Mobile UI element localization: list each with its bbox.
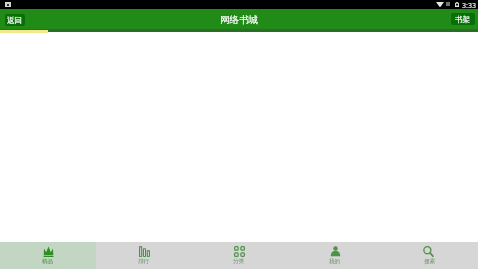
staticText: 我的 (329, 258, 341, 265)
other: 分类 (234, 246, 245, 257)
button[interactable]: 分类 (191, 242, 287, 269)
staticText: 网络书城 (220, 14, 258, 26)
other: 搜索 (423, 246, 434, 257)
other: 我的 (330, 246, 341, 257)
button[interactable]: 搜索 (382, 242, 478, 269)
staticText: 书架 (455, 15, 471, 25)
staticText: 3:33 (462, 1, 476, 11)
other: 排行 (139, 246, 150, 257)
button[interactable]: 书架 (451, 13, 475, 25)
staticText: 精品 (42, 258, 54, 265)
button[interactable]: 我的 (287, 242, 383, 269)
button[interactable]: 返回 (5, 14, 25, 26)
staticText: 搜索 (424, 258, 436, 265)
other: 精品 (43, 246, 54, 257)
button[interactable]: 排行 (96, 242, 192, 269)
button[interactable]: 精品 (0, 242, 96, 269)
staticText: 分类 (233, 258, 245, 265)
staticText: 排行 (138, 258, 150, 265)
staticText: 返回 (7, 16, 23, 26)
